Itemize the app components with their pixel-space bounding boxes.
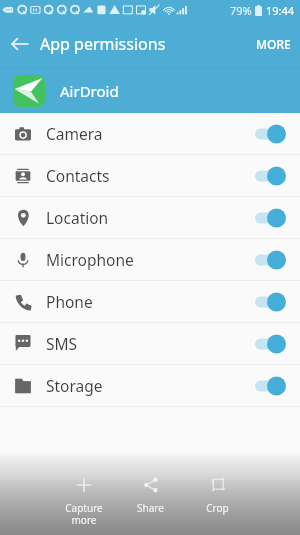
staticText: Camera [46, 123, 103, 144]
button[interactable]: AirDroid [0, 68, 300, 113]
staticText: Storage [46, 375, 103, 396]
button[interactable]: Toggle permission [254, 250, 286, 270]
button[interactable]: Toggle permission [254, 166, 286, 186]
button[interactable]: MORE [245, 26, 300, 62]
button[interactable]: Phone [0, 281, 300, 323]
button[interactable]: Contacts [0, 155, 300, 197]
button[interactable]: Toggle permission [254, 208, 286, 228]
staticText: MORE [256, 36, 291, 52]
staticText: Microphone [46, 249, 134, 270]
other: Crop [210, 477, 226, 493]
staticText: Location [46, 207, 109, 228]
staticText: Crop [206, 501, 229, 515]
button[interactable]: Toggle permission [254, 124, 286, 144]
other: Capture more [76, 477, 92, 493]
button[interactable]: Storage [0, 365, 300, 407]
button[interactable]: Toggle permission [254, 334, 286, 354]
button[interactable]: Back [0, 24, 40, 64]
staticText: App permissions [40, 33, 166, 55]
staticText: SMS [46, 333, 78, 354]
staticText: Capture more [65, 501, 103, 527]
staticText: Contacts [46, 165, 110, 186]
other: Share [143, 477, 159, 493]
button[interactable]: SMS [0, 323, 300, 365]
staticText: Phone [46, 291, 93, 312]
button[interactable]: Capture more [50, 463, 117, 535]
staticText: 79% [230, 3, 252, 18]
staticText: Share [137, 501, 164, 515]
button[interactable]: Crop [184, 463, 251, 535]
button[interactable]: Toggle permission [254, 376, 286, 396]
button[interactable]: Location [0, 197, 300, 239]
button[interactable]: Microphone [0, 239, 300, 281]
button[interactable]: Camera [0, 113, 300, 155]
button[interactable]: Toggle permission [254, 292, 286, 312]
button[interactable]: Share [117, 463, 184, 535]
staticText: 19:44 [266, 3, 295, 18]
staticText: AirDroid [60, 81, 119, 101]
